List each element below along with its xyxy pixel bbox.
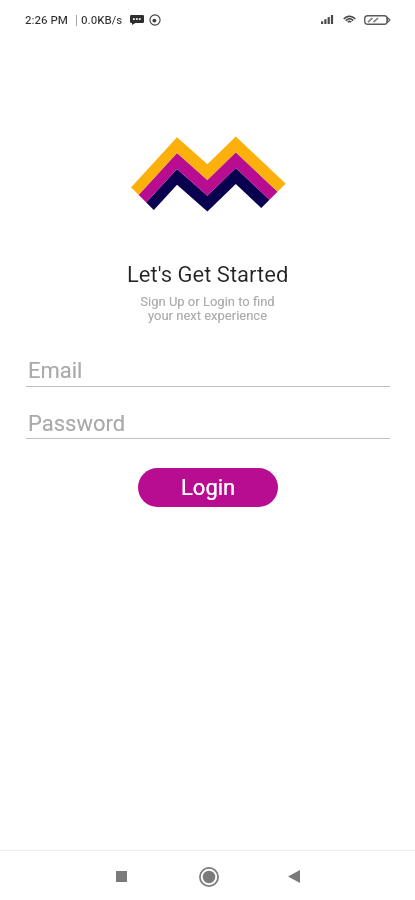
staticText: | xyxy=(75,13,78,27)
button[interactable]: Email xyxy=(26,358,390,387)
button[interactable]: Login xyxy=(138,468,278,507)
staticText: Login xyxy=(181,475,236,501)
button[interactable]: Recent apps xyxy=(99,854,144,899)
staticText: 0.0KB/s xyxy=(81,13,123,26)
button[interactable]: Back xyxy=(271,854,316,899)
staticText: 2:26 PM xyxy=(25,13,68,26)
staticText: Let's Get Started xyxy=(127,262,289,288)
button[interactable]: Home xyxy=(186,854,231,899)
staticText: Email xyxy=(28,358,83,384)
staticText: Password xyxy=(28,411,126,437)
button[interactable]: Password xyxy=(26,411,390,439)
staticText: Sign Up or Login to find your next exper… xyxy=(140,294,275,324)
